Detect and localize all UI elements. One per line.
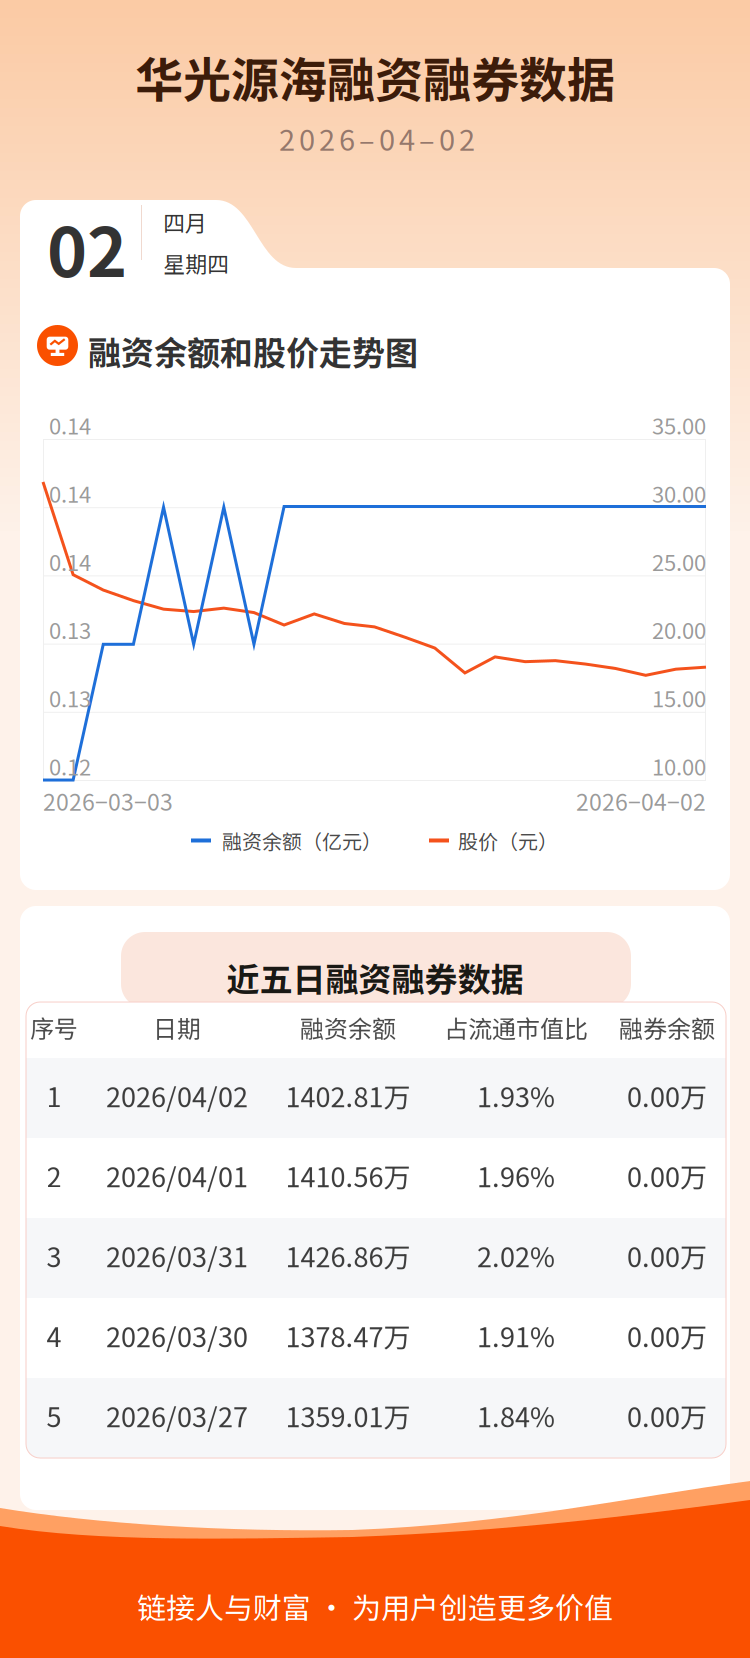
staticText: 0.00万 [627,1156,707,1195]
staticText: 3 [46,1236,61,1275]
staticText: 0.13 [49,614,91,645]
staticText: 2026/03/30 [106,1316,248,1355]
staticText: 四月 [163,206,207,238]
staticText: 1.93% [477,1076,555,1115]
staticText: 2026/04/02 [106,1076,248,1115]
staticText: 星期四 [163,247,229,279]
staticText: 15.00 [652,682,706,714]
staticText: 融资余额（亿元） [222,826,382,855]
staticText: 0.13 [49,682,91,714]
staticText: 2026–04–02 [279,117,475,159]
staticText: 2026/03/31 [106,1236,248,1275]
staticText: 2.02% [477,1236,555,1275]
staticText: 25.00 [652,545,706,577]
staticText: 0.00万 [627,1076,707,1115]
staticText: 20.00 [652,614,706,645]
staticText: 1426.86万 [285,1236,410,1275]
staticText: 0.12 [49,750,91,782]
staticText: 2026−03−03 [43,784,173,817]
staticText: 5 [46,1396,61,1435]
staticText: 链接人与财富 · 为用户创造更多价值 [137,1585,613,1627]
staticText: 0.00万 [627,1396,707,1435]
staticText: 4 [46,1316,61,1355]
staticText: 融资余额和股价走势图 [88,327,418,375]
staticText: 0.00万 [627,1236,707,1275]
staticText: 30.00 [652,477,706,509]
staticText: 1.84% [477,1396,555,1435]
staticText: 0.14 [49,477,91,509]
staticText: 02 [47,198,127,296]
staticText: 1410.56万 [285,1156,410,1195]
staticText: 占流通市值比 [444,1010,588,1045]
staticText: 序号 [30,1010,78,1045]
staticText: 2 [46,1156,61,1195]
staticText: 1.91% [477,1316,555,1355]
staticText: 1402.81万 [285,1076,410,1115]
staticText: 1359.01万 [285,1396,410,1435]
staticText: 华光源海融资融券数据 [135,42,615,111]
staticText: 融资余额 [300,1010,396,1045]
staticText: 日期 [153,1010,201,1045]
staticText: 2026/03/27 [106,1396,248,1435]
staticText: 35.00 [652,409,706,441]
staticText: 1.96% [477,1156,555,1195]
staticText: 0.14 [49,409,91,441]
staticText: 融券余额 [619,1010,715,1045]
staticText: 2026−04−02 [576,784,706,817]
staticText: 0.14 [49,545,91,577]
staticText: 10.00 [652,750,706,782]
staticText: 1 [46,1076,61,1115]
staticText: 股价（元） [458,826,558,855]
staticText: 2026/04/01 [106,1156,248,1195]
staticText: 近五日融资融券数据 [226,954,523,1001]
staticText: 1378.47万 [285,1316,410,1355]
staticText: 0.00万 [627,1316,707,1355]
